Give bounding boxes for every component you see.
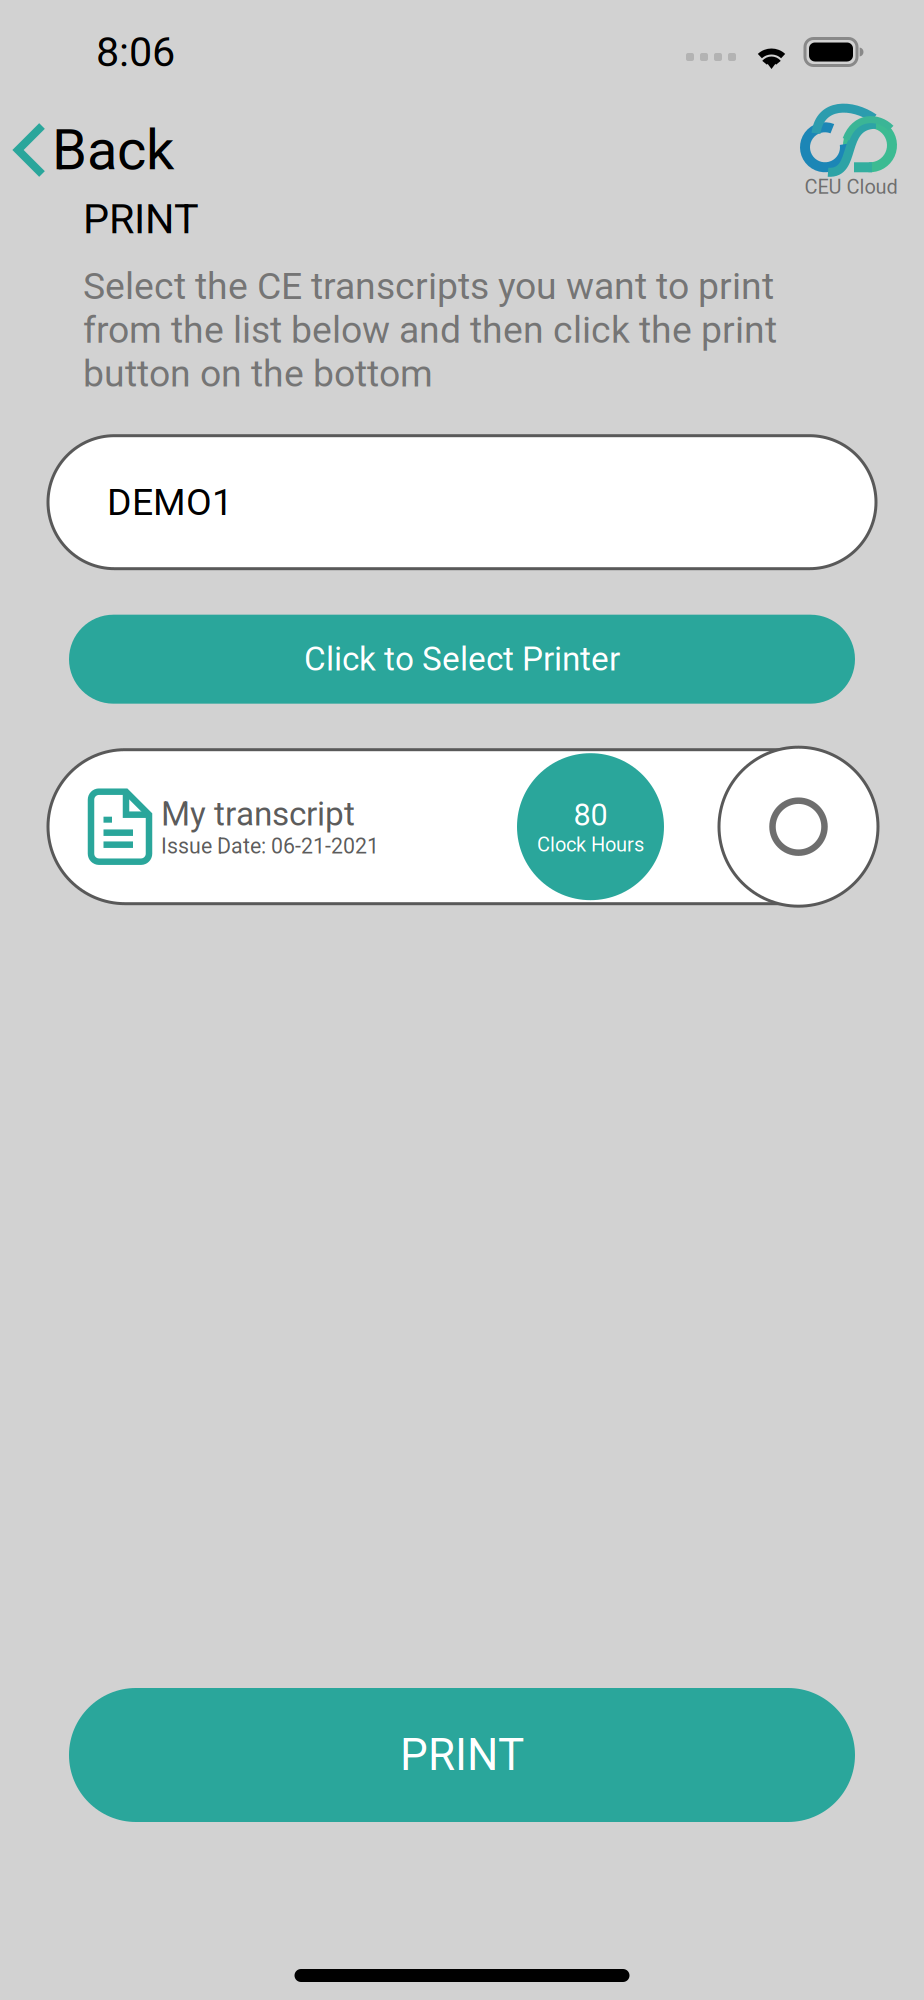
staticText: Clock Hours — [537, 833, 644, 856]
staticText: Issue Date: 06-21-2021 — [161, 834, 379, 859]
staticText: Select the CE transcripts you want to pr… — [83, 264, 777, 396]
button[interactable]: Back — [0, 113, 174, 183]
staticText: PRINT — [400, 1729, 524, 1781]
button[interactable]: Select transcript — [719, 747, 878, 906]
button[interactable]: DEMO1 — [0, 436, 924, 569]
button[interactable]: Click to Select Printer — [0, 615, 924, 704]
staticText: CEU Cloud — [804, 175, 897, 199]
staticText: DEMO1 — [107, 480, 233, 524]
button[interactable]: My transcript — [0, 750, 924, 904]
staticText: PRINT — [83, 195, 199, 243]
staticText: 80 — [573, 797, 607, 833]
staticText: 8:06 — [96, 28, 175, 76]
staticText: My transcript — [161, 795, 355, 834]
staticText: Click to Select Printer — [304, 640, 620, 679]
staticText: Back — [52, 117, 174, 183]
button[interactable]: PRINT — [0, 1688, 924, 1822]
